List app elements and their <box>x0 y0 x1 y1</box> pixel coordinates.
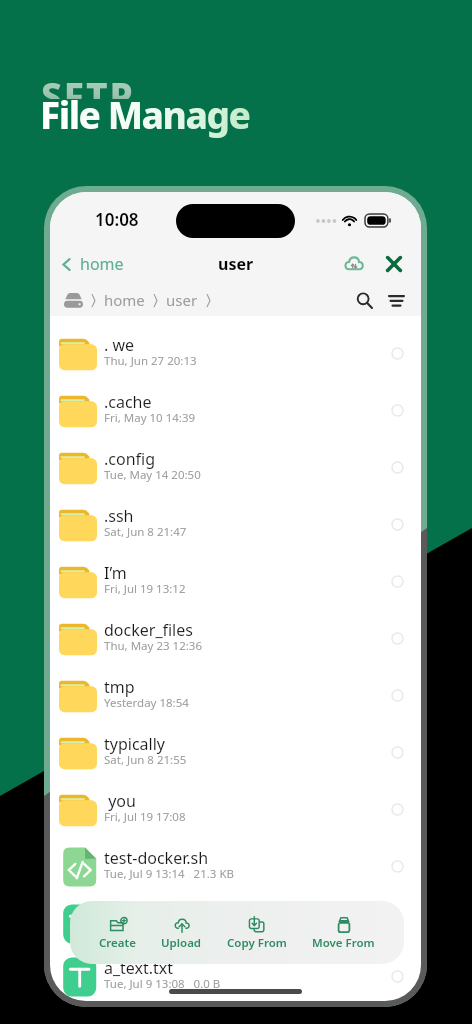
button[interactable]: Transfers <box>339 249 369 279</box>
staticText: Thu, May 23 12:36 <box>104 638 202 654</box>
staticText: home <box>104 290 145 310</box>
staticText: Sat, Jun 8 21:55 <box>104 752 187 768</box>
staticText: 〉 <box>153 293 158 308</box>
staticText: Tue, Jul 9 13:10 1.2 KB <box>104 923 228 939</box>
button[interactable]: . we <box>50 325 421 382</box>
staticText: you <box>104 790 136 812</box>
staticText: typically <box>104 733 165 755</box>
staticText: Create <box>99 935 136 951</box>
button[interactable]: Create <box>99 911 136 954</box>
button[interactable]: Copy From <box>227 911 287 954</box>
button[interactable]: Sort <box>383 287 409 313</box>
button[interactable]: typically <box>50 724 421 781</box>
staticText: 10:08 <box>95 208 139 231</box>
staticText: I’m <box>104 562 127 584</box>
button[interactable]: home <box>50 247 132 281</box>
staticText: Upload <box>161 935 202 951</box>
staticText: a_text.txt <box>104 957 174 979</box>
staticText: Tue, May 14 20:50 <box>104 467 201 483</box>
staticText: hidden.txt <box>104 904 181 926</box>
staticText: . we <box>104 334 135 356</box>
staticText: 〉 <box>206 293 211 308</box>
staticText: Copy From <box>227 935 287 951</box>
staticText: tmp <box>104 676 135 698</box>
staticText: Fri, May 10 14:39 <box>104 410 196 426</box>
button[interactable]: .cache <box>50 382 421 439</box>
staticText: Tue, Jul 9 13:08 0.0 B <box>104 976 221 992</box>
staticText: docker_files <box>104 619 193 641</box>
button[interactable]: tmp <box>50 667 421 724</box>
staticText: .cache <box>104 391 152 413</box>
staticText: user <box>166 290 198 310</box>
button[interactable]: you <box>50 781 421 838</box>
staticText: Tue, Jul 9 13:14 21.3 KB <box>104 866 235 882</box>
staticText: Fri, Jul 19 17:08 <box>104 809 186 825</box>
button[interactable]: hidden.txt <box>50 895 421 952</box>
button[interactable]: test-docker.sh <box>50 838 421 895</box>
button[interactable]: Upload <box>161 911 202 954</box>
staticText: 〉 <box>91 293 96 308</box>
button[interactable]: Close <box>379 249 409 279</box>
button[interactable]: .ssh <box>50 496 421 553</box>
staticText: Thu, Jun 27 20:13 <box>104 353 197 369</box>
staticText: Sat, Jun 8 21:47 <box>104 524 187 540</box>
staticText: test-docker.sh <box>104 847 209 869</box>
button[interactable]: I’m <box>50 553 421 610</box>
staticText: Fri, Jul 19 13:12 <box>104 581 186 597</box>
staticText: .config <box>104 448 156 470</box>
staticText: Move From <box>312 935 375 951</box>
button[interactable]: Move From <box>312 911 375 954</box>
staticText: Yesterday 18:54 <box>104 695 189 711</box>
button[interactable]: docker_files <box>50 610 421 667</box>
staticText: .ssh <box>104 505 134 527</box>
button[interactable]: .config <box>50 439 421 496</box>
button[interactable]: a_text.txt <box>50 952 421 1001</box>
staticText: File Manage <box>40 89 250 139</box>
button[interactable]: Search <box>351 287 377 313</box>
staticText: SFTP <box>41 70 135 99</box>
staticText: home <box>80 253 124 275</box>
staticText: user <box>218 253 254 275</box>
